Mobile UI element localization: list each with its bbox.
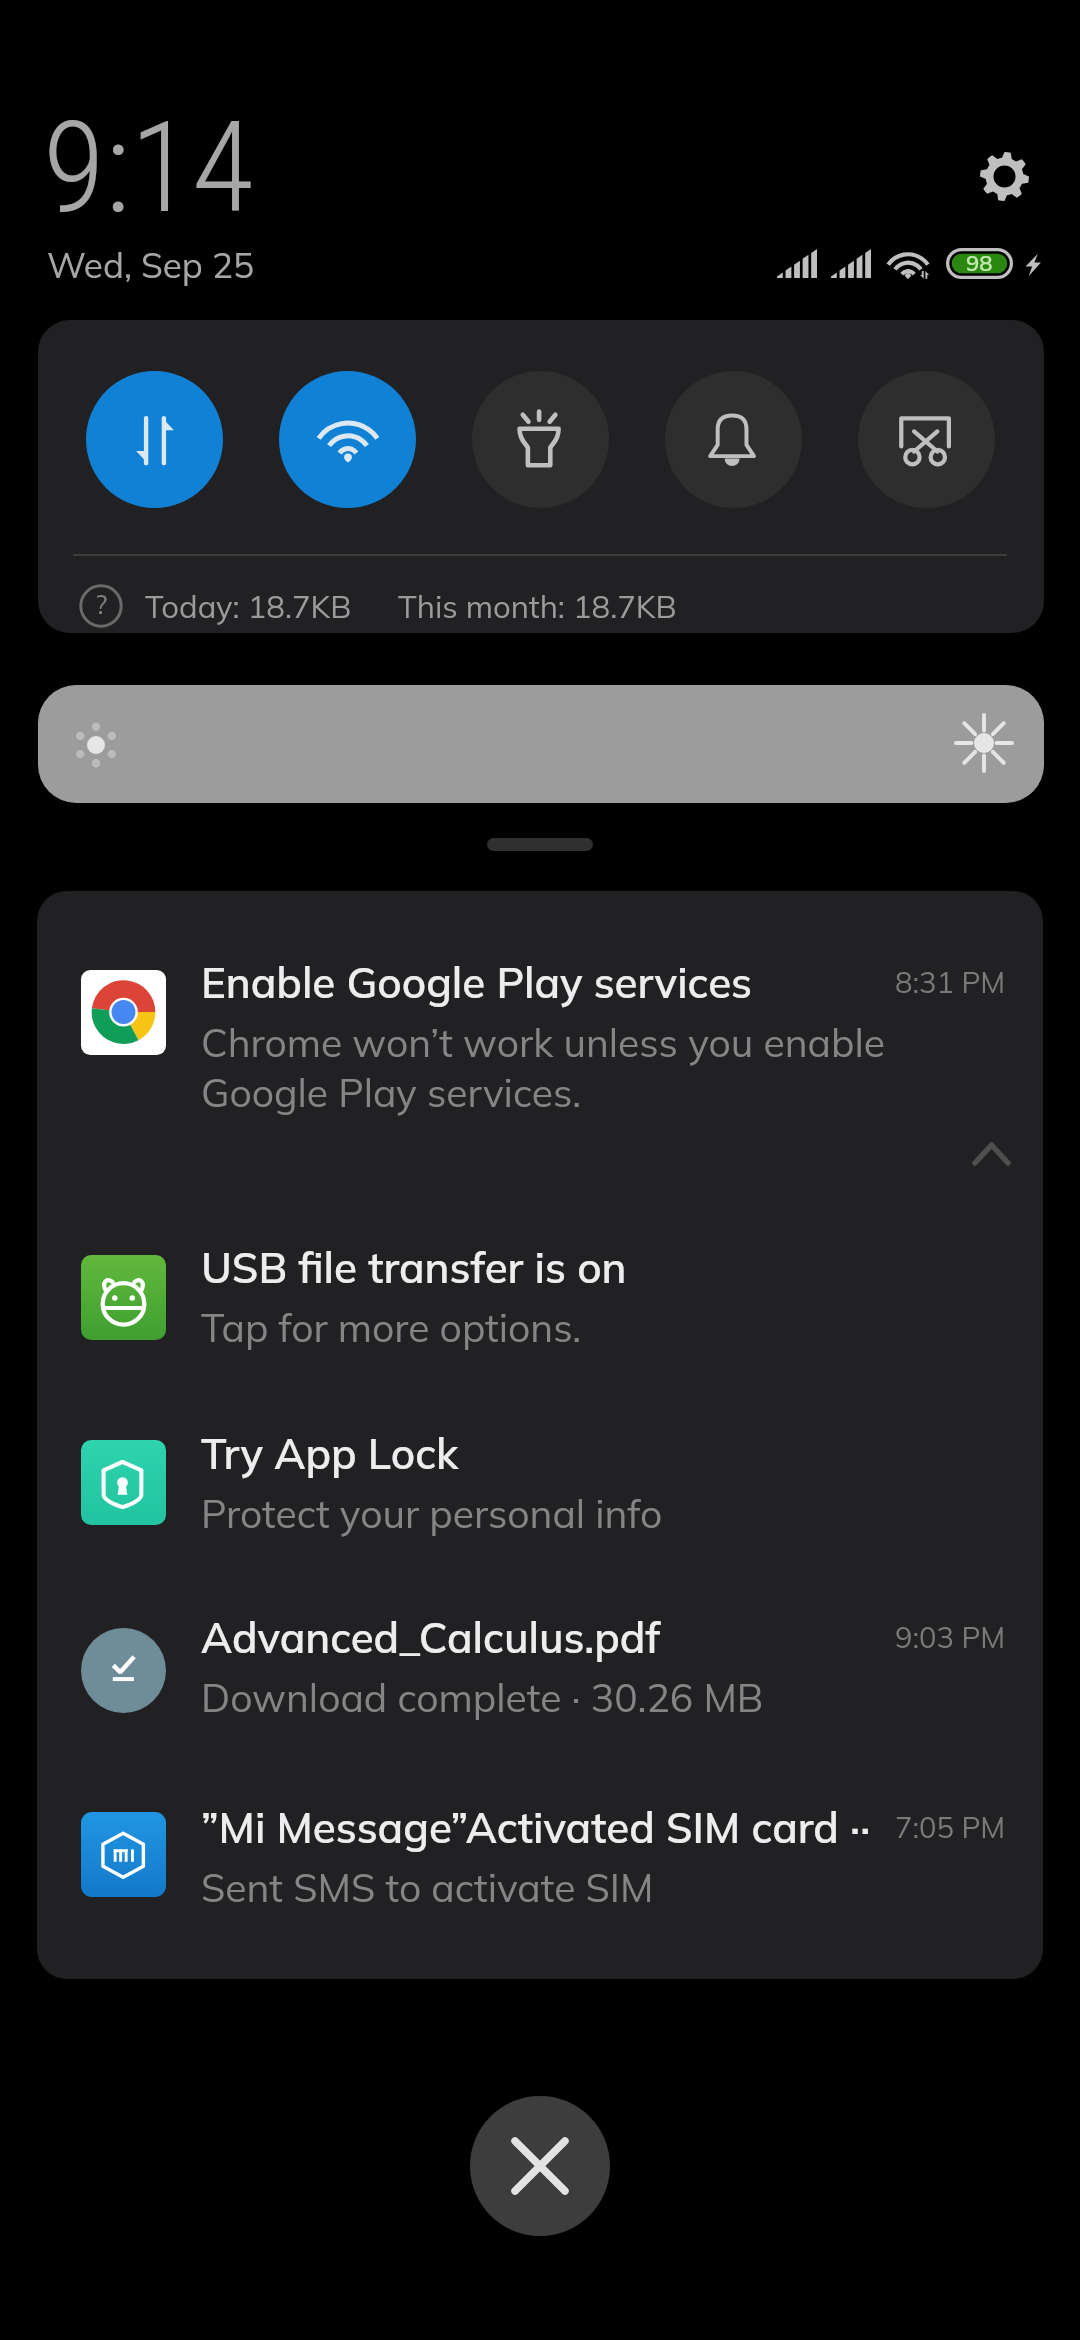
staticText: Download complete · 30.26 MB xyxy=(201,1673,764,1722)
button[interactable]: Try App Lock xyxy=(37,1397,1043,1565)
staticText: 8:31 PM xyxy=(895,964,1006,1000)
staticText: Wed, Sep 25 xyxy=(47,243,254,287)
staticText: 9:03 PM xyxy=(895,1619,1006,1655)
staticText: Protect your personal info xyxy=(201,1489,663,1538)
staticText: Sent SMS to activate SIM xyxy=(201,1863,654,1912)
staticText: USB file transfer is on xyxy=(201,1241,627,1294)
button[interactable]: Silent mode xyxy=(665,371,802,508)
button[interactable]: USB file transfer is on xyxy=(37,1211,1043,1379)
button[interactable]: Brightness xyxy=(38,685,1044,803)
button[interactable]: Close xyxy=(470,2096,610,2236)
button[interactable]: Screenshot xyxy=(858,371,995,508)
staticText: This month: 18.7KB xyxy=(398,587,677,626)
staticText: 98 xyxy=(966,249,993,277)
staticText: ? xyxy=(95,586,108,621)
button[interactable]: Settings xyxy=(966,138,1042,214)
button[interactable]: Collapse xyxy=(977,1097,1043,1193)
button[interactable]: ”Mi Message”Activated SIM card ·· xyxy=(37,1771,1043,1939)
staticText: Enable Google Play services xyxy=(201,956,752,1009)
staticText: Advanced_Calculus.pdf xyxy=(201,1611,661,1664)
button[interactable]: Enable Google Play services xyxy=(37,926,1043,1181)
staticText: 9:14 xyxy=(43,93,254,242)
staticText: Tap for more options. xyxy=(201,1303,582,1352)
button[interactable]: Advanced_Calculus.pdf xyxy=(37,1581,1043,1753)
staticText: Chrome won’t work unless you enable Goog… xyxy=(201,1018,885,1117)
button[interactable]: Mobile data xyxy=(86,371,223,508)
staticText: Try App Lock xyxy=(201,1427,459,1480)
staticText: Today: 18.7KB xyxy=(145,587,352,626)
staticText: ”Mi Message”Activated SIM card ·· xyxy=(201,1801,871,1854)
staticText: 7:05 PM xyxy=(895,1809,1006,1845)
button[interactable]: Flashlight xyxy=(472,371,609,508)
button[interactable]: Wi-Fi xyxy=(279,371,416,508)
